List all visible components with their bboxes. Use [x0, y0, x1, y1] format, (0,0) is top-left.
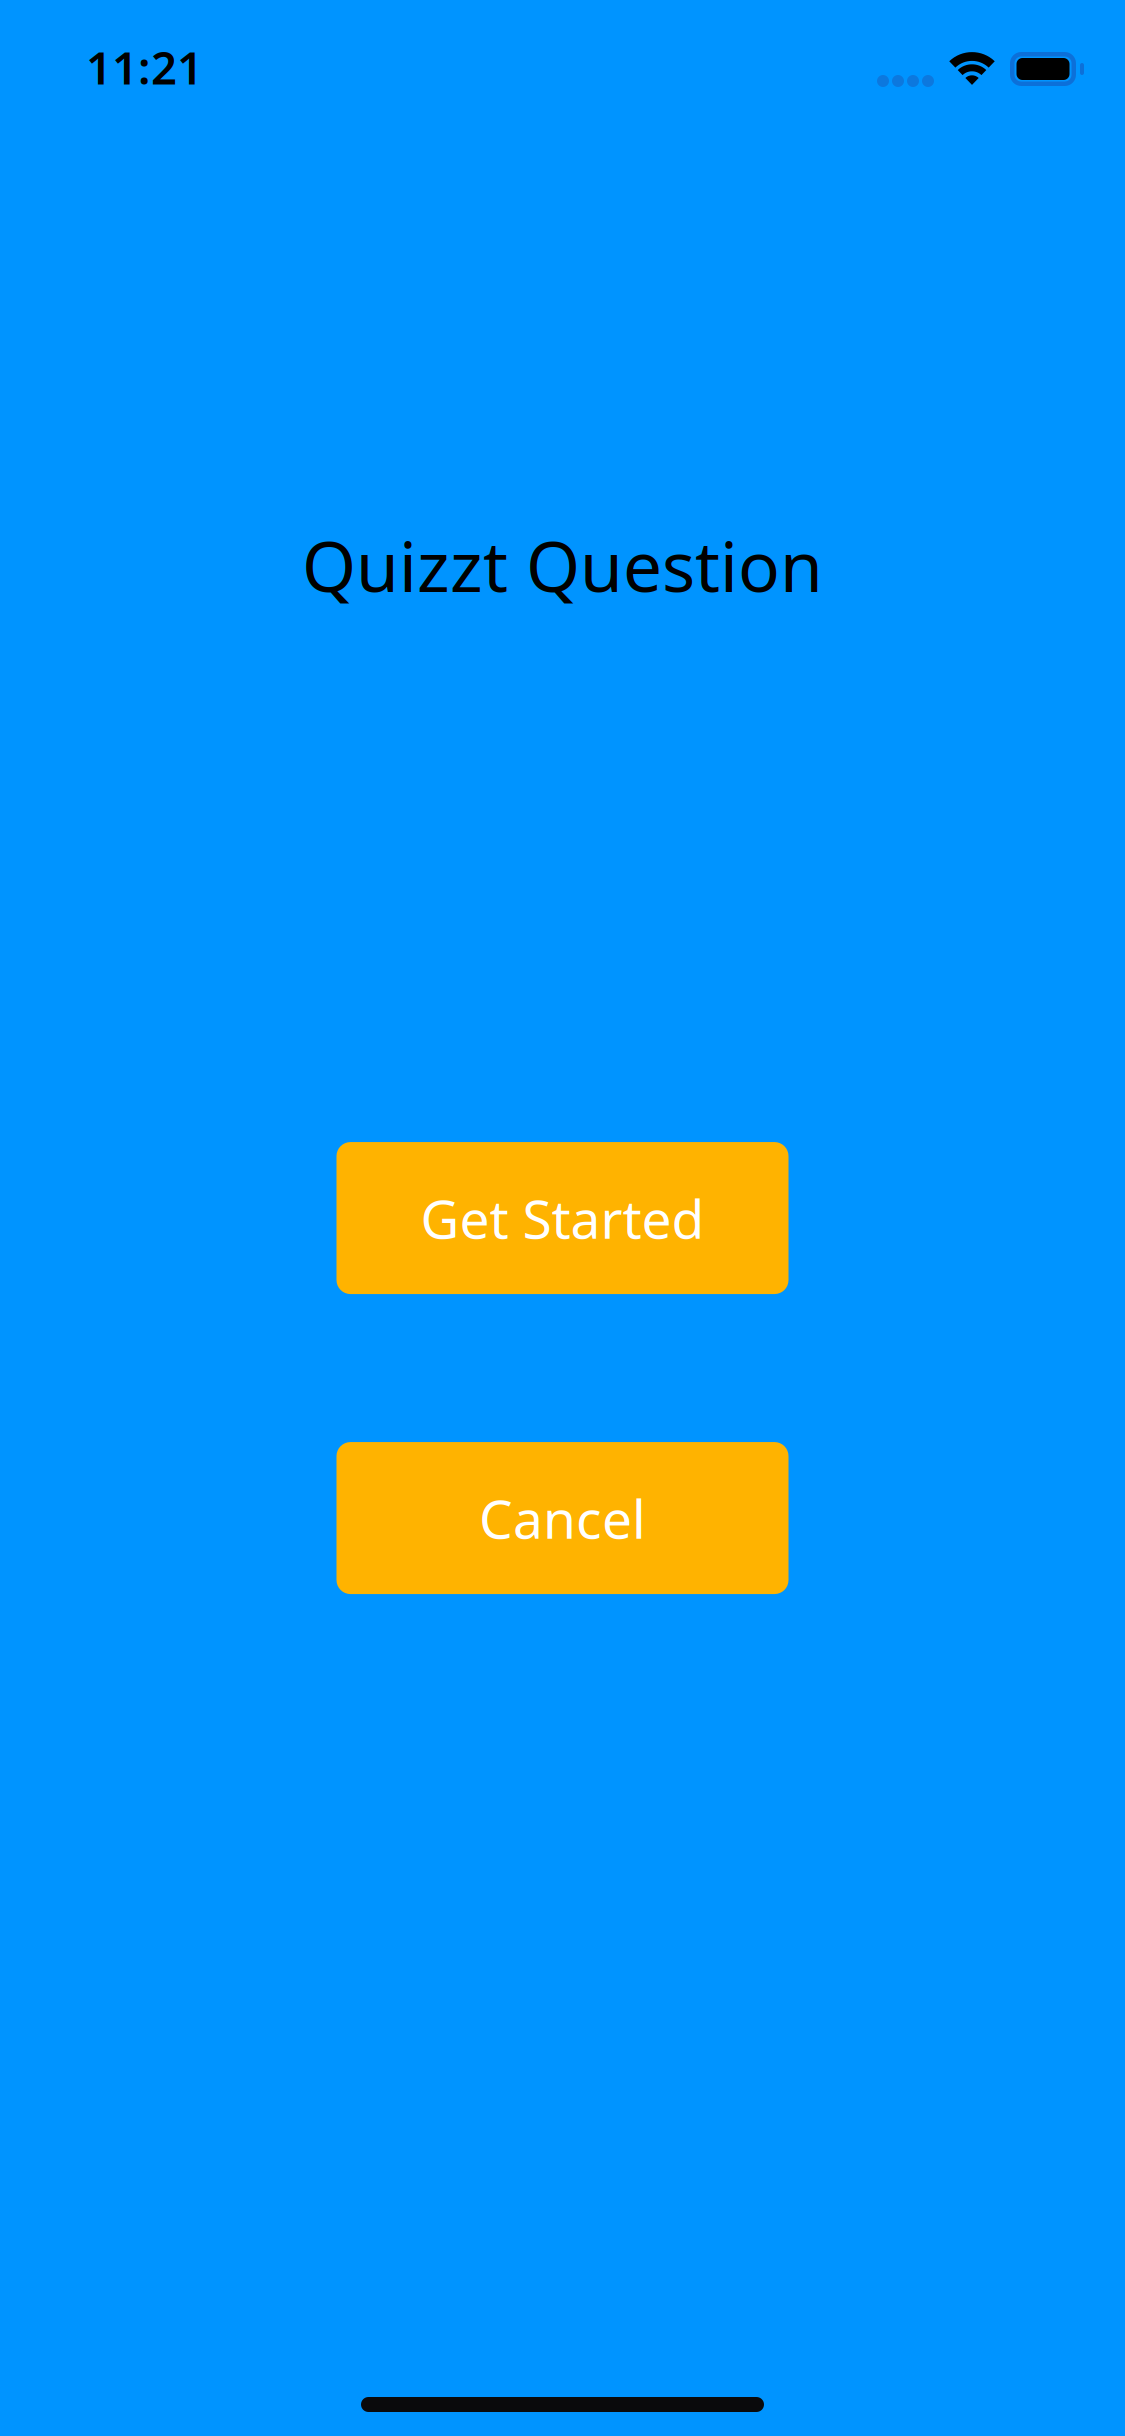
staticText: Quizzt Question [302, 519, 823, 611]
button[interactable]: Get Started [336, 1142, 788, 1294]
staticText: 11:21 [86, 37, 203, 97]
staticText: Cancel [479, 1483, 646, 1553]
staticText: Get Started [420, 1183, 704, 1253]
button[interactable]: Cancel [336, 1442, 788, 1594]
